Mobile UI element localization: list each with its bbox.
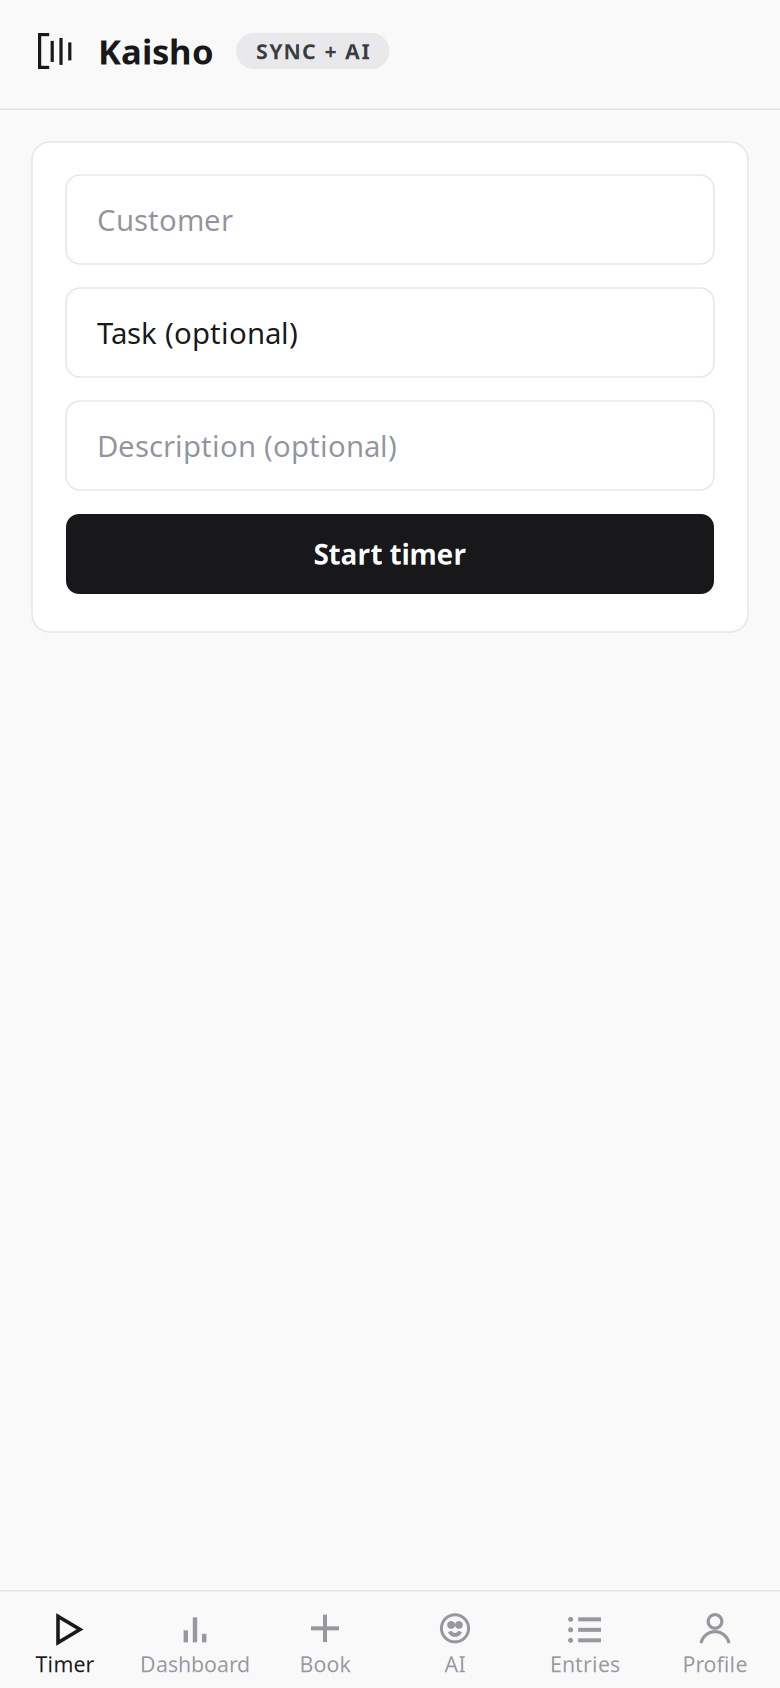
button[interactable]: Task (optional) bbox=[66, 288, 714, 377]
staticText: Start timer bbox=[313, 535, 466, 573]
button[interactable]: Description (optional) bbox=[66, 401, 714, 490]
button[interactable]: Entries bbox=[520, 1588, 650, 1688]
staticText: SYNC + AI bbox=[256, 37, 369, 65]
button[interactable]: Customer bbox=[66, 175, 714, 264]
button[interactable]: Timer bbox=[0, 1588, 130, 1688]
staticText: Timer bbox=[35, 1650, 94, 1678]
staticText: Customer bbox=[97, 200, 233, 239]
staticText: Kaisho bbox=[98, 28, 214, 74]
button[interactable]: Dashboard bbox=[130, 1588, 260, 1688]
button[interactable]: Book bbox=[260, 1588, 390, 1688]
button[interactable]: Profile bbox=[650, 1588, 780, 1688]
staticText: Dashboard bbox=[140, 1650, 250, 1678]
staticText: Description (optional) bbox=[97, 426, 397, 465]
staticText: Entries bbox=[550, 1650, 620, 1678]
button[interactable]: Start timer bbox=[66, 514, 714, 594]
staticText: Book bbox=[299, 1650, 350, 1678]
button[interactable]: AI bbox=[390, 1588, 520, 1688]
staticText: Task (optional) bbox=[97, 313, 298, 352]
staticText: AI bbox=[444, 1650, 465, 1678]
staticText: Profile bbox=[682, 1650, 747, 1678]
